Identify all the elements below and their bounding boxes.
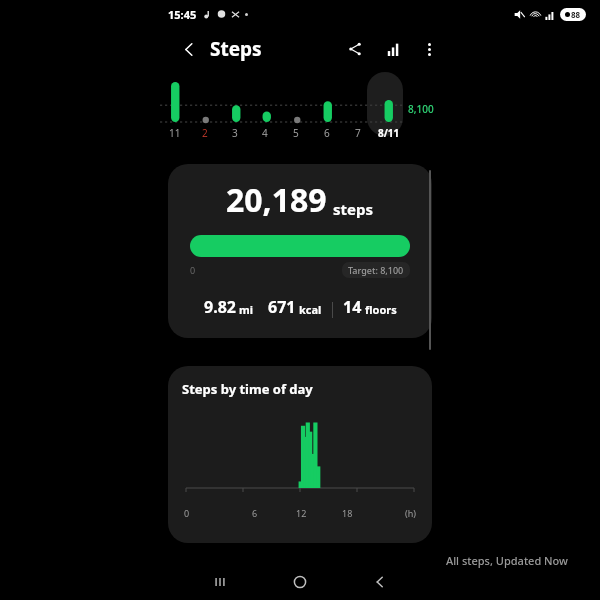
staticText: 8,100 bbox=[408, 102, 434, 116]
staticText: 0 bbox=[184, 507, 190, 519]
button[interactable]: Home bbox=[260, 564, 340, 600]
button[interactable] bbox=[367, 72, 403, 136]
staticText: 88 bbox=[571, 9, 581, 20]
staticText: floors bbox=[365, 302, 397, 317]
staticText: 6 bbox=[324, 126, 330, 140]
button[interactable]: Recent apps bbox=[180, 564, 260, 600]
staticText: 0 bbox=[190, 264, 196, 276]
staticText: 14 bbox=[343, 296, 362, 318]
button[interactable]: Chart bbox=[380, 36, 406, 62]
staticText: 11 bbox=[169, 126, 181, 140]
staticText: (h) bbox=[405, 507, 416, 519]
staticText: 12 bbox=[296, 507, 307, 519]
button[interactable]: Steps by time of day bbox=[168, 366, 432, 543]
staticText: 5 bbox=[293, 126, 299, 140]
staticText: 2 bbox=[202, 126, 208, 140]
staticText: 6 bbox=[252, 507, 258, 519]
staticText: 3 bbox=[232, 126, 238, 140]
staticText: 9.82 bbox=[204, 296, 236, 318]
staticText: 4 bbox=[262, 126, 268, 140]
staticText: 8/11 bbox=[378, 126, 400, 140]
button[interactable]: More options bbox=[416, 36, 442, 62]
button[interactable]: Share bbox=[342, 36, 368, 62]
staticText: mi bbox=[239, 302, 254, 317]
staticText: 15:45 bbox=[168, 7, 197, 22]
staticText: 671 bbox=[268, 296, 296, 318]
button[interactable]: Back bbox=[340, 564, 420, 600]
button[interactable]: 20,189 bbox=[168, 164, 432, 338]
staticText: 7 bbox=[355, 126, 361, 140]
staticText: kcal bbox=[299, 302, 322, 317]
staticText: steps bbox=[333, 199, 374, 219]
button[interactable]: Back bbox=[176, 36, 202, 62]
staticText: 18 bbox=[342, 507, 353, 519]
staticText: Steps bbox=[210, 36, 262, 62]
staticText: All steps, Updated Now bbox=[0, 553, 568, 568]
staticText: 20,189 bbox=[226, 178, 327, 222]
staticText: Steps by time of day bbox=[182, 380, 313, 398]
staticText: Target: 8,100 bbox=[348, 264, 404, 276]
